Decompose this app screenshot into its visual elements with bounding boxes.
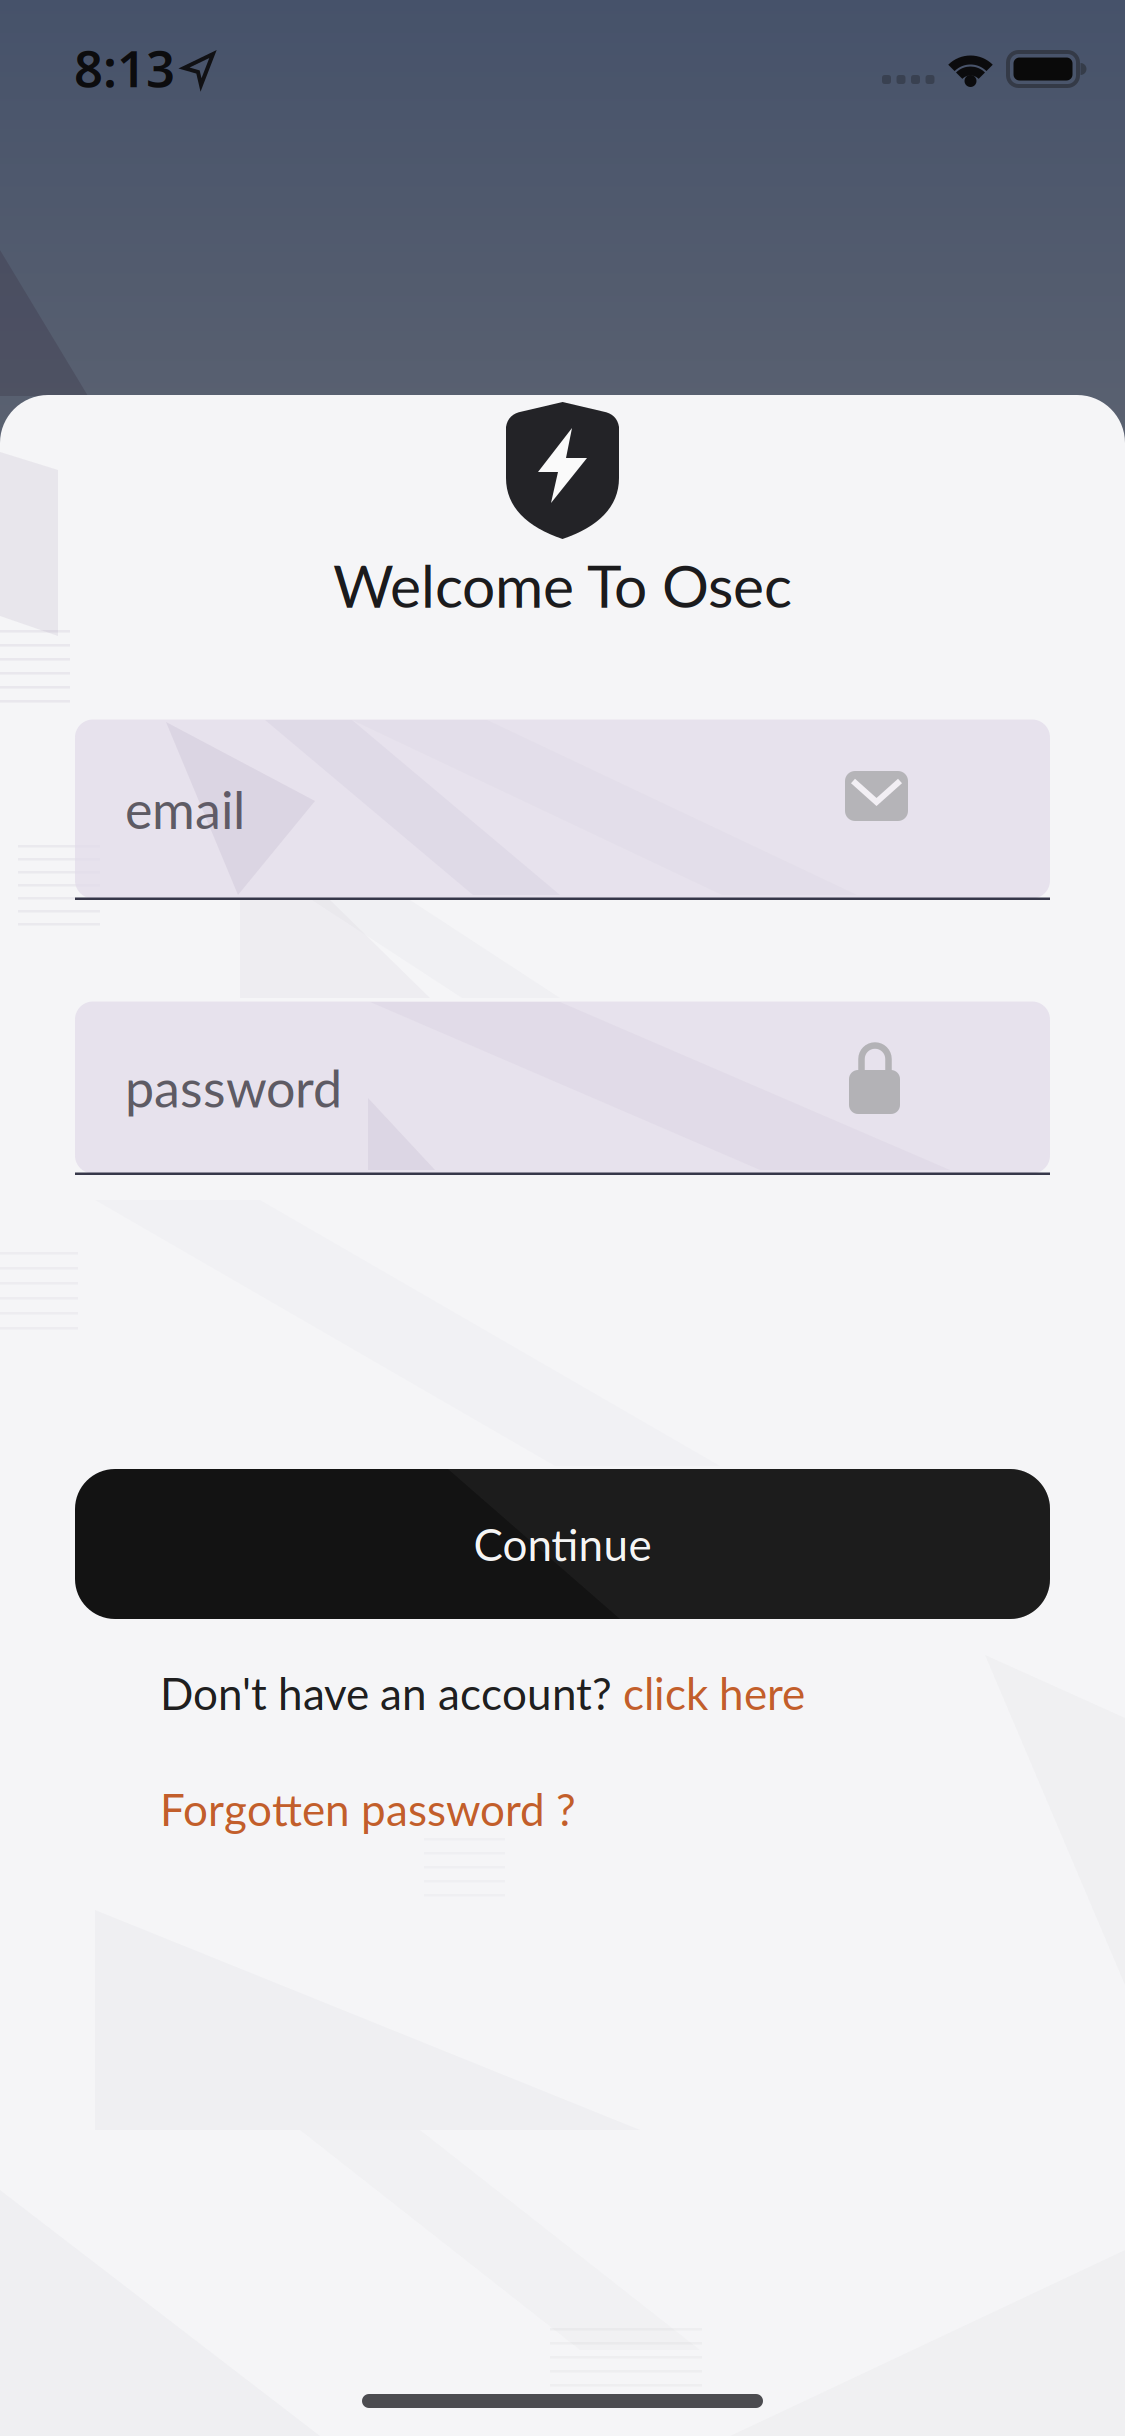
- staticText: 8:13: [74, 34, 175, 101]
- staticText: email: [125, 778, 245, 840]
- staticText: Welcome To Osec: [333, 550, 792, 620]
- button[interactable]: Continue: [75, 1469, 1050, 1619]
- staticText: click here: [623, 1667, 805, 1719]
- button[interactable]: Forgotten password ?: [160, 1783, 576, 1835]
- button[interactable]: password: [75, 1000, 1050, 1175]
- button[interactable]: email: [75, 718, 1050, 900]
- staticText: Continue: [473, 1518, 651, 1570]
- staticText: password: [125, 1056, 342, 1119]
- staticText: Don't have an account?: [160, 1667, 623, 1719]
- staticText: Forgotten password ?: [160, 1783, 576, 1835]
- button[interactable]: click here: [623, 1667, 805, 1719]
